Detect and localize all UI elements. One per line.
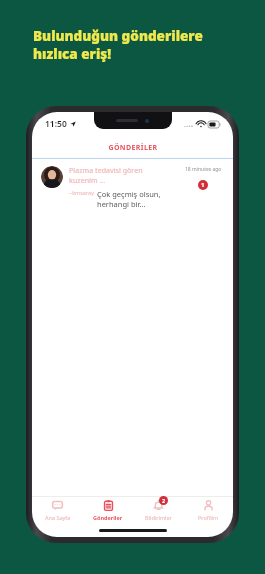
other: Ana Sayfa <box>52 500 63 511</box>
staticText: Gönderiler <box>93 514 123 521</box>
staticText: GÖNDERİLER <box>108 143 158 153</box>
other: Gönderiler <box>103 500 114 511</box>
staticText: 1 <box>201 181 205 189</box>
staticText: Çok geçmiş olsun, herhangi bir... <box>97 189 178 209</box>
staticText: ~kmsaray <box>69 189 94 196</box>
button[interactable]: Gönderiler <box>83 497 133 526</box>
button[interactable]: Plazma tedavisi gören kuzenim ... <box>32 159 233 217</box>
button[interactable]: Bildirimler <box>133 497 183 526</box>
staticText: Plazma tedavisi gören kuzenim ... <box>69 166 178 186</box>
button[interactable]: Profilim <box>183 497 233 526</box>
staticText: 18 minutes ago <box>185 166 222 173</box>
staticText: Profilim <box>198 514 219 521</box>
other: Bildirimler <box>153 500 164 511</box>
staticText: Bulunduğun gönderilere <box>33 27 203 45</box>
staticText: hızlıca eriş! <box>33 45 112 63</box>
button[interactable]: Ana Sayfa <box>32 497 83 526</box>
staticText: Ana Sayfa <box>45 514 71 521</box>
staticText: Bildirimler <box>145 514 172 521</box>
staticText: 2 <box>162 497 166 504</box>
staticText: 11:50 <box>45 118 67 130</box>
other: Profilim <box>203 500 214 511</box>
